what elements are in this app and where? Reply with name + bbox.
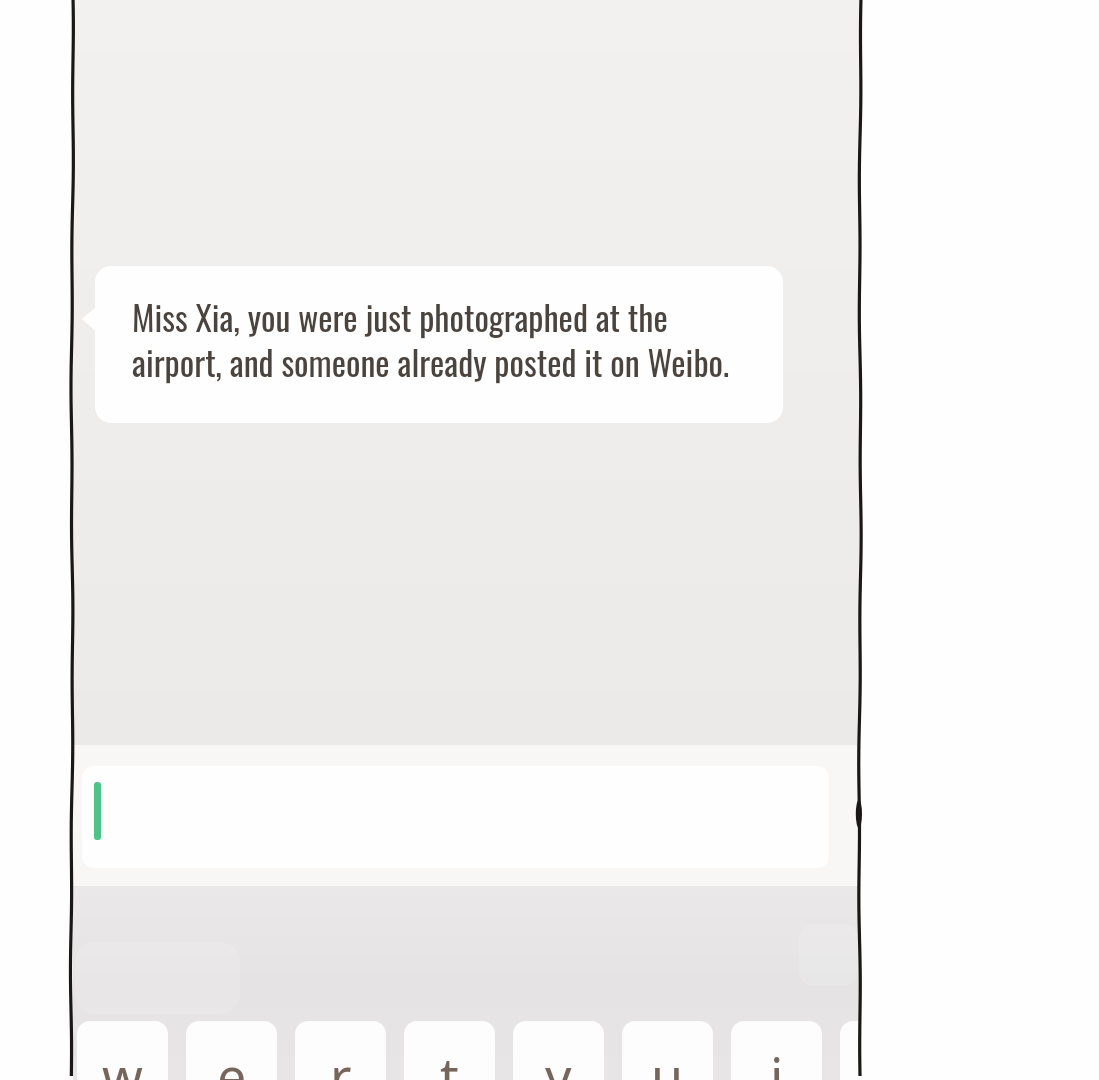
button[interactable] bbox=[840, 1021, 859, 1080]
button[interactable] bbox=[82, 766, 829, 868]
staticText: u bbox=[651, 1040, 684, 1080]
button[interactable]: y bbox=[513, 1021, 604, 1080]
button[interactable]: r bbox=[295, 1021, 386, 1080]
staticText: airport, and someone already posted it o… bbox=[132, 336, 730, 386]
button[interactable] bbox=[95, 266, 783, 423]
button[interactable]: i bbox=[731, 1021, 822, 1080]
staticText: t bbox=[440, 1040, 459, 1080]
button[interactable]: u bbox=[622, 1021, 713, 1080]
staticText: r bbox=[330, 1040, 352, 1080]
staticText: w bbox=[102, 1040, 143, 1080]
staticText: e bbox=[217, 1040, 247, 1080]
staticText: i bbox=[770, 1040, 784, 1080]
staticText: y bbox=[545, 1040, 572, 1080]
button[interactable]: w bbox=[77, 1021, 168, 1080]
staticText: Miss Xia, you were just photographed at … bbox=[132, 291, 668, 341]
button[interactable]: t bbox=[404, 1021, 495, 1080]
button[interactable]: e bbox=[186, 1021, 277, 1080]
